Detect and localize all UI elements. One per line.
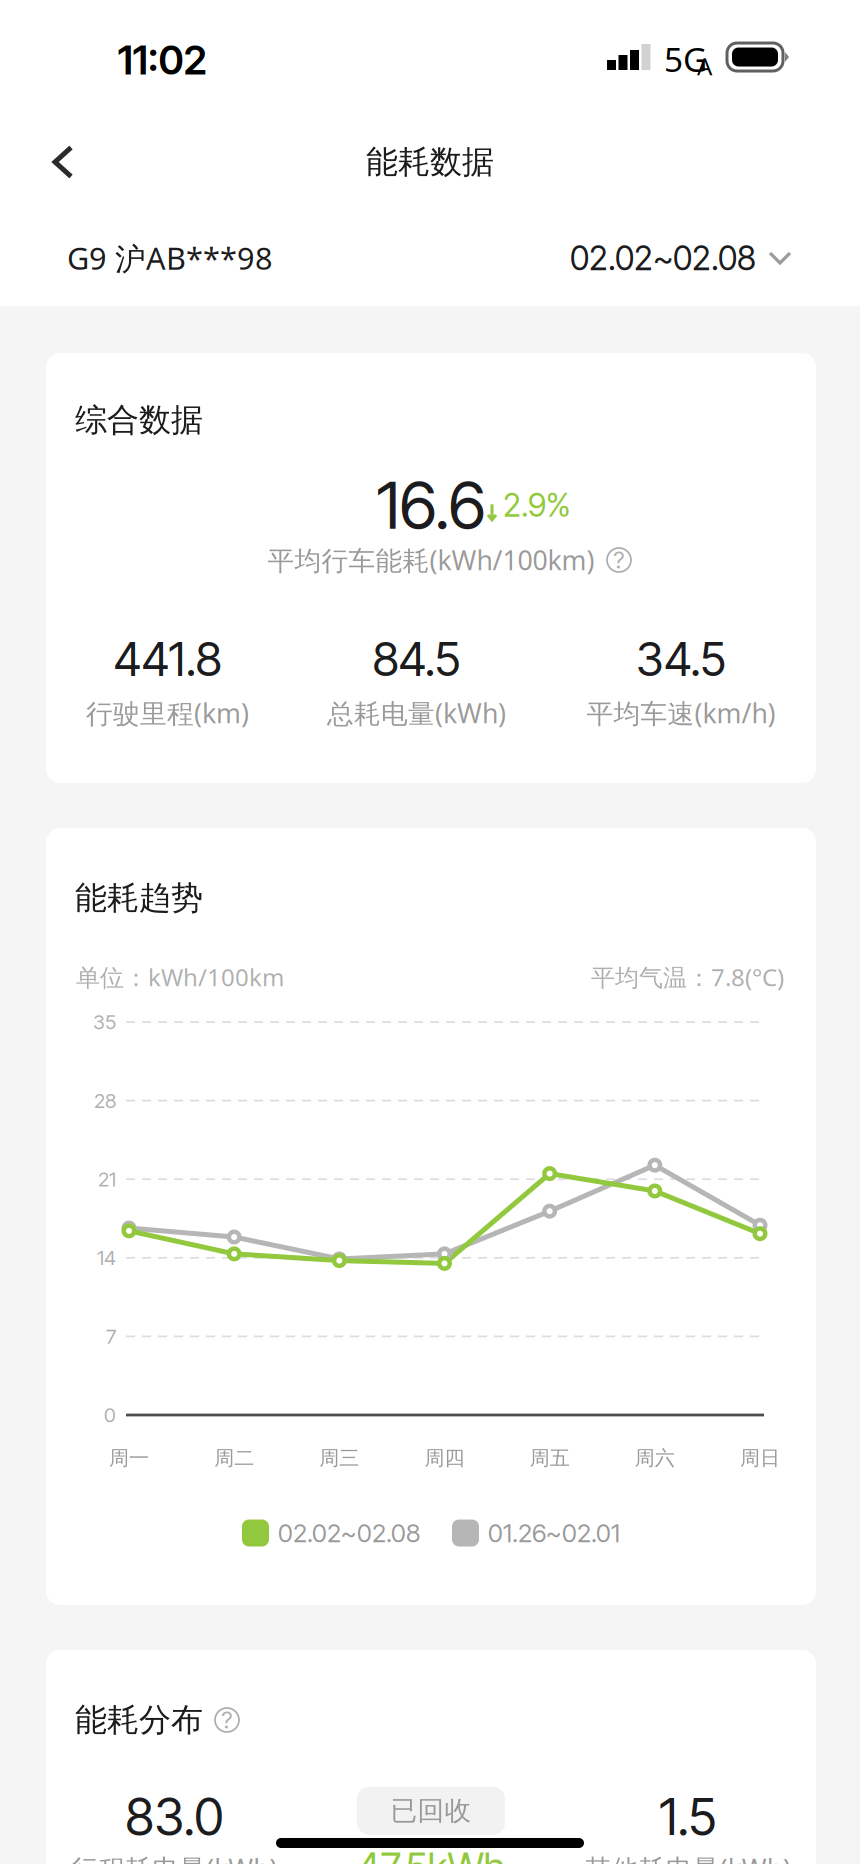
- staticText: 02.02~02.08: [278, 1518, 420, 1548]
- staticText: A: [697, 50, 712, 82]
- staticText: 周六: [635, 1446, 675, 1470]
- staticText: 周四: [424, 1446, 464, 1470]
- staticText: ?: [221, 1706, 232, 1734]
- staticText: ?: [613, 546, 624, 574]
- staticText: 行程耗电量(kWh): [71, 1851, 277, 1864]
- staticText: 83.0: [125, 1786, 223, 1847]
- button[interactable]: Back: [21, 120, 105, 204]
- staticText: 11:02: [117, 36, 206, 84]
- staticText: 综合数据: [75, 400, 203, 440]
- staticText: 能耗数据: [366, 142, 494, 182]
- staticText: 441.8: [113, 631, 221, 687]
- staticText: 能耗趋势: [75, 878, 203, 918]
- staticText: 5G: [664, 37, 707, 81]
- staticText: 01.26~02.01: [488, 1518, 620, 1548]
- staticText: 周五: [530, 1446, 570, 1470]
- staticText: 1.5: [659, 1786, 716, 1847]
- staticText: 28: [94, 1088, 116, 1113]
- staticText: 02.02~02.08: [570, 238, 756, 278]
- staticText: 21: [98, 1167, 116, 1191]
- staticText: 周三: [319, 1446, 359, 1470]
- staticText: 7: [106, 1324, 116, 1348]
- staticText: 14: [97, 1246, 116, 1270]
- staticText: 0: [104, 1403, 116, 1427]
- staticText: 单位：kWh/100km: [76, 961, 284, 993]
- staticText: 其他耗电量(kWh): [585, 1851, 791, 1864]
- staticText: 周日: [740, 1446, 780, 1470]
- staticText: 已回收: [390, 1794, 471, 1827]
- staticText: G9 沪AB***98: [67, 238, 273, 278]
- staticText: 35: [93, 1010, 116, 1034]
- staticText: 周一: [109, 1446, 149, 1470]
- staticText: 能耗分布: [75, 1700, 203, 1740]
- staticText: 行驶里程(km): [86, 695, 249, 731]
- staticText: 47.5kWh: [356, 1843, 505, 1864]
- staticText: 2.9%: [503, 486, 571, 524]
- staticText: 总耗电量(kWh): [327, 695, 506, 731]
- staticText: 84.5: [372, 631, 460, 687]
- staticText: 平均气温：7.8(°C): [591, 961, 784, 993]
- staticText: 平均行车能耗(kWh/100km): [267, 542, 594, 578]
- staticText: 34.5: [636, 631, 726, 687]
- staticText: 周二: [214, 1446, 254, 1470]
- staticText: 平均车速(km/h): [586, 695, 775, 731]
- button[interactable]: 02.02~02.08: [570, 230, 792, 286]
- staticText: 16.6: [376, 465, 485, 544]
